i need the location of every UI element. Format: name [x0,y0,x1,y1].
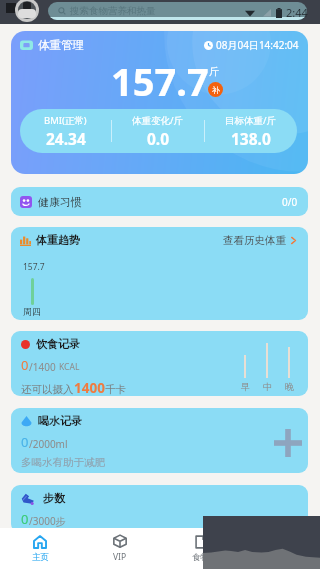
staticText: 中 [263,381,272,392]
staticText: 0.0 [147,128,170,149]
staticText: VIP [113,551,127,563]
staticText: 157.7 [111,55,209,107]
staticText: 1400 [74,379,105,396]
staticText: 0 [21,433,29,451]
button[interactable]: 食物 [160,528,240,569]
staticText: 体重变化/斤 [132,114,184,127]
staticText: 还可以摄入 [21,383,74,396]
staticText: 目标体重/斤 [225,114,277,127]
button[interactable]: 添加喝水记录 [274,429,302,457]
button[interactable]: 主页 [0,528,80,569]
staticText: 步数 [43,491,65,505]
button[interactable]: 步数 [11,485,308,533]
staticText: 周四 [23,306,41,317]
staticText: 主页 [32,552,49,563]
staticText: BMI(正常) [44,114,87,127]
staticText: 0 [21,356,29,374]
staticText: 晚 [285,381,294,392]
button[interactable]: 喝水记录 [11,408,308,473]
staticText: /3000步 [29,514,66,528]
staticText: 千卡 [105,383,126,396]
staticText: 饮食记录 [36,337,80,351]
staticText: 体重管理 [38,38,84,52]
staticText: 08月04日14:42:04 [216,38,299,52]
button[interactable]: 体重管理 [11,31,308,174]
button[interactable]: 饮食记录 [11,331,308,396]
button[interactable]: VIP [80,528,160,569]
button[interactable]: 体重趋势 [11,227,308,320]
staticText: 查看历史体重 [223,234,286,247]
staticText: 食物 [192,552,209,563]
button[interactable]: 健康习惯 [11,187,308,216]
staticText: 体重趋势 [36,233,80,247]
staticText: 补 [212,85,220,95]
staticText: 24.34 [46,128,86,149]
staticText: /1400 [29,360,59,374]
staticText: 健康习惯 [38,195,82,209]
staticText: 2:44 [286,5,308,20]
staticText: 喝水记录 [38,414,82,428]
staticText: 0/0 [282,195,298,209]
staticText: 早 [241,381,250,392]
staticText: 157.7 [23,261,45,273]
staticText: 斤 [209,65,219,78]
staticText: 0 [21,510,29,528]
staticText: KCAL [59,361,80,373]
button[interactable]: 我的 [240,528,320,569]
staticText: 138.0 [231,128,271,149]
staticText: 多喝水有助于减肥 [21,456,105,469]
staticText: /2000ml [29,437,68,451]
button[interactable]: 查看历史体重 [223,234,298,247]
staticText: 搜索食物营养和热量 [70,5,156,17]
